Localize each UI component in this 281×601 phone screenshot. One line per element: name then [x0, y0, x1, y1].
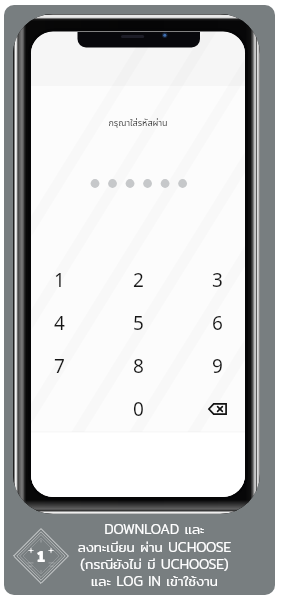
staticText: 2 — [133, 267, 144, 293]
button[interactable]: 0 — [109, 390, 167, 428]
staticText: 0 — [133, 396, 144, 422]
button[interactable]: 5 — [109, 304, 167, 342]
button[interactable]: 4 — [31, 304, 88, 342]
button[interactable]: Backspace — [188, 390, 245, 428]
button[interactable]: 3 — [188, 261, 245, 299]
staticText: 7 — [54, 353, 65, 379]
button[interactable]: Step 1 — [13, 528, 69, 584]
button[interactable]: 1 — [31, 261, 88, 299]
staticText: 1 — [37, 544, 45, 568]
staticText: 4 — [54, 310, 65, 336]
button[interactable]: 8 — [109, 347, 167, 385]
button[interactable]: 6 — [188, 304, 245, 342]
staticText: 8 — [133, 353, 144, 379]
staticText: 5 — [133, 310, 144, 336]
staticText: 1 — [54, 267, 65, 293]
staticText: 9 — [212, 353, 223, 379]
button[interactable]: 2 — [109, 261, 167, 299]
button[interactable]: 7 — [31, 347, 88, 385]
button[interactable]: 9 — [188, 347, 245, 385]
staticText: 6 — [212, 310, 223, 336]
staticText: 3 — [212, 267, 223, 293]
staticText: DOWNLOAD และ ลงทะเบียน ผ่าน UCHOOSE (กรณ… — [64, 519, 245, 599]
staticText: กรุณาใส่รหัสผ่าน — [31, 116, 245, 497]
